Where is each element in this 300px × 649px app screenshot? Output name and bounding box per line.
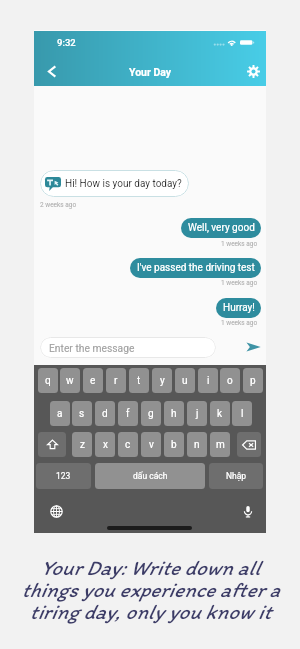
staticText: s (79, 408, 85, 420)
button[interactable]: y (152, 368, 172, 393)
staticText: 9:32 (57, 37, 76, 48)
button[interactable]: p (243, 368, 263, 393)
staticText: q (45, 375, 51, 387)
staticText: o (227, 375, 233, 387)
staticText: things you experience after a (21, 577, 280, 602)
button[interactable]: q (38, 368, 58, 393)
button[interactable]: u (175, 368, 195, 393)
button[interactable]: w (60, 368, 80, 393)
button[interactable]: v (141, 432, 161, 457)
button[interactable]: o (220, 368, 240, 393)
button[interactable]: Hi! How is your day today? (40, 170, 189, 197)
staticText: v (149, 439, 154, 451)
staticText: 1 weeks ago (221, 240, 258, 248)
button[interactable]: Send (242, 336, 264, 358)
staticText: w (66, 375, 74, 387)
staticText: z (80, 439, 85, 451)
button[interactable]: i (198, 368, 218, 393)
staticText: 2 weeks ago (40, 201, 77, 209)
button[interactable]: 123 (36, 463, 91, 489)
button[interactable]: Well, very good (181, 218, 261, 238)
staticText: r (114, 375, 118, 387)
button[interactable]: j (187, 401, 207, 426)
button[interactable]: f (118, 401, 138, 426)
staticText: tiring day, only you know it (29, 599, 271, 624)
button[interactable]: b (164, 432, 184, 457)
button[interactable]: Settings (239, 57, 267, 86)
button[interactable]: e (83, 368, 103, 393)
button[interactable]: Back (38, 57, 66, 86)
staticText: a (57, 408, 63, 420)
button[interactable]: a (50, 401, 70, 426)
button[interactable]: Voice input (237, 500, 259, 522)
staticText: Your Day (129, 66, 172, 78)
staticText: Hi! How is your day today? (65, 178, 182, 190)
button[interactable]: s (72, 401, 92, 426)
button[interactable]: t (129, 368, 149, 393)
staticText: l (241, 408, 244, 420)
staticText: k (217, 408, 223, 420)
staticText: j (196, 408, 199, 420)
staticText: Hurray! (223, 302, 255, 314)
button[interactable]: d (95, 401, 115, 426)
staticText: g (148, 408, 154, 420)
button[interactable]: Enter the message (40, 337, 216, 358)
staticText: b (171, 439, 177, 451)
button[interactable]: I've passed the driving test (130, 258, 261, 278)
staticText: u (182, 375, 188, 387)
staticText: d (102, 408, 108, 420)
staticText: h (171, 408, 177, 420)
staticText: Nhập (226, 471, 247, 481)
button[interactable]: h (164, 401, 184, 426)
button[interactable]: l (232, 401, 252, 426)
button[interactable]: Shift (38, 432, 66, 457)
staticText: 123 (56, 471, 71, 481)
button[interactable]: m (210, 432, 230, 457)
button[interactable]: r (106, 368, 126, 393)
staticText: Enter the message (49, 342, 135, 354)
button[interactable]: g (141, 401, 161, 426)
button[interactable]: z (72, 432, 92, 457)
button[interactable]: Change keyboard (45, 500, 67, 522)
button[interactable]: c (118, 432, 138, 457)
staticText: 1 weeks ago (221, 279, 258, 287)
staticText: i (207, 375, 210, 387)
staticText: c (125, 439, 131, 451)
staticText: I've passed the driving test (137, 262, 255, 274)
staticText: y (160, 375, 165, 387)
staticText: Your Day: Write down all (40, 555, 260, 580)
button[interactable]: dấu cách (95, 463, 205, 489)
button[interactable]: Hurray! (216, 298, 261, 318)
staticText: e (90, 375, 96, 387)
staticText: Well, very good (188, 222, 255, 234)
button[interactable]: n (187, 432, 207, 457)
button[interactable]: Nhập (209, 463, 263, 489)
staticText: p (250, 375, 256, 387)
staticText: dấu cách (133, 471, 168, 481)
staticText: m (216, 439, 225, 451)
button[interactable]: k (210, 401, 230, 426)
button[interactable]: x (95, 432, 115, 457)
staticText: 1 weeks ago (221, 319, 258, 327)
staticText: f (126, 408, 130, 420)
button[interactable]: Backspace (237, 432, 261, 457)
staticText: t (137, 375, 141, 387)
staticText: n (194, 439, 200, 451)
staticText: x (103, 439, 108, 451)
